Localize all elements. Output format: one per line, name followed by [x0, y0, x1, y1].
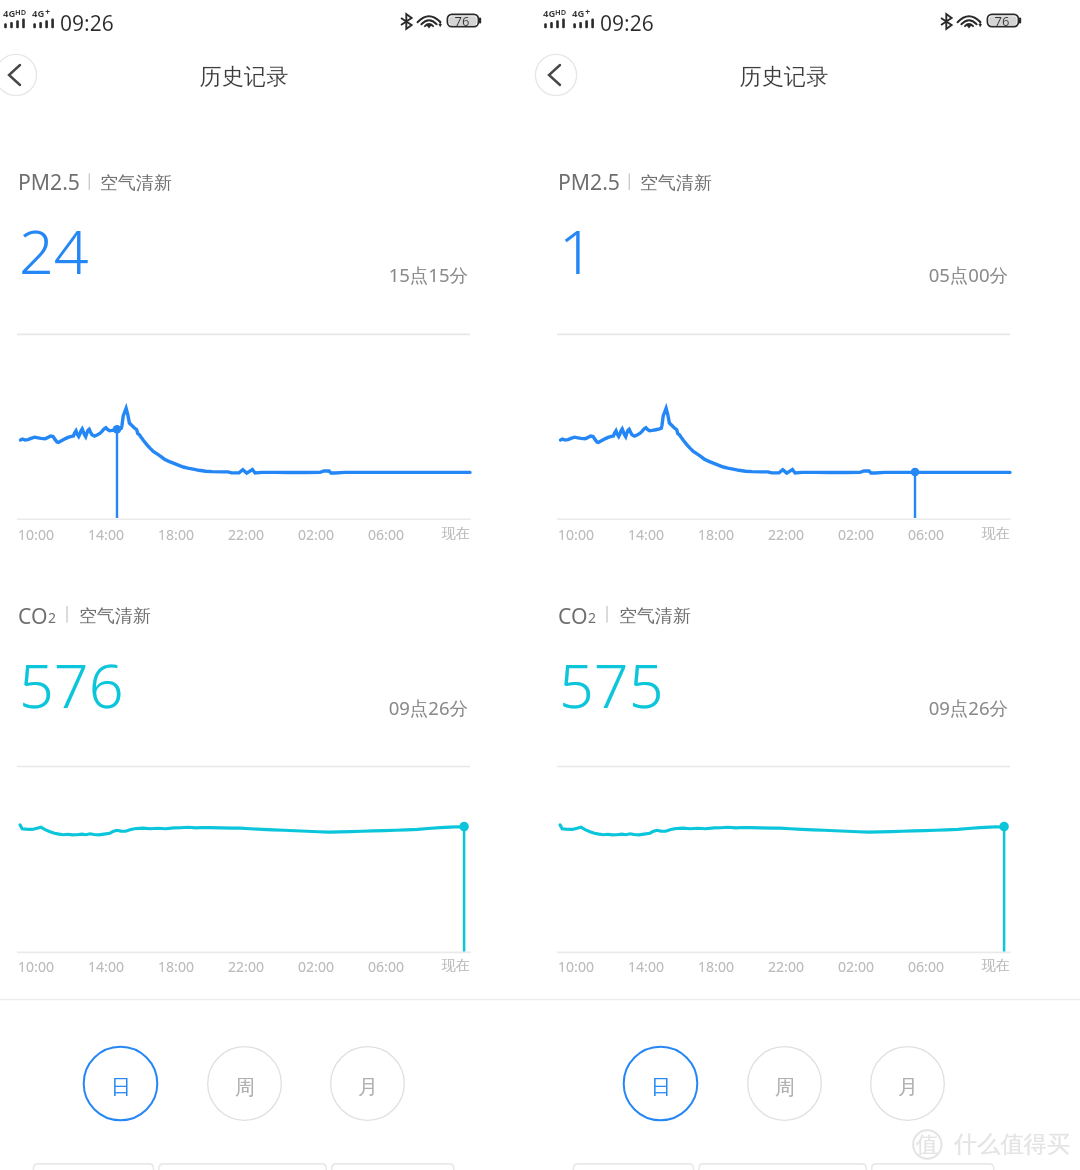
button[interactable]: 日 — [623, 1046, 698, 1121]
staticText: 22:00 — [746, 957, 826, 979]
staticText: 10:00 — [536, 957, 616, 979]
staticText: HD — [15, 7, 415, 19]
button[interactable]: CO2 history card — [0, 575, 540, 985]
staticText: 4G — [543, 7, 943, 22]
button[interactable]: Back — [0, 54, 37, 96]
staticText: 22:00 — [206, 525, 286, 547]
staticText: 历史记录 — [684, 63, 884, 99]
staticText: 09:26 — [600, 9, 1000, 43]
staticText: 现在 — [416, 525, 496, 547]
staticText: 空气清新 — [640, 172, 1040, 201]
staticText: 22:00 — [746, 525, 826, 547]
staticText: + — [585, 5, 985, 20]
staticText: 76 — [987, 12, 1017, 33]
staticText: 4G — [3, 7, 403, 22]
staticText: PM2.5 — [18, 167, 418, 201]
staticText: 10:00 — [0, 957, 76, 979]
button[interactable]: 月 — [870, 1046, 945, 1121]
staticText: 空气清新 — [79, 605, 479, 634]
button[interactable]: 月 — [330, 1046, 405, 1121]
staticText: 09:26 — [60, 9, 460, 43]
staticText: 14:00 — [66, 957, 146, 979]
staticText: 什么值得买 — [954, 1130, 1080, 1167]
staticText: 06:00 — [346, 525, 426, 547]
staticText: 日 — [111, 1075, 131, 1100]
staticText: 09点26分 — [608, 695, 1008, 725]
staticText: 月 — [358, 1075, 378, 1100]
staticText: 14:00 — [606, 525, 686, 547]
staticText: 现在 — [416, 957, 496, 979]
staticText: 4G — [32, 7, 432, 22]
button[interactable]: CO2 history card — [540, 575, 1080, 985]
staticText: 日 — [651, 1075, 671, 1100]
staticText: 14:00 — [606, 957, 686, 979]
staticText: 02:00 — [816, 525, 896, 547]
staticText: 周 — [775, 1075, 795, 1100]
staticText: 02:00 — [816, 957, 896, 979]
staticText: 06:00 — [346, 957, 426, 979]
staticText: 02:00 — [276, 525, 356, 547]
staticText: 18:00 — [136, 957, 216, 979]
staticText: HD — [555, 7, 955, 19]
button[interactable]: PM2.5 history card — [0, 140, 540, 555]
staticText: 576 — [19, 643, 419, 741]
staticText: 09点26分 — [68, 695, 468, 725]
staticText: 空气清新 — [100, 172, 500, 201]
staticText: 05点00分 — [608, 262, 1008, 292]
staticText: 2 — [588, 608, 988, 630]
staticText: 1 — [559, 209, 959, 307]
button[interactable]: PM2.5 history card — [540, 140, 1080, 555]
staticText: 现在 — [956, 957, 1036, 979]
staticText: 76 — [447, 12, 477, 33]
staticText: 24 — [19, 209, 419, 307]
staticText: CO — [18, 601, 418, 635]
staticText: 06:00 — [886, 525, 966, 547]
staticText: + — [45, 5, 445, 20]
staticText: 18:00 — [136, 525, 216, 547]
staticText: 2 — [48, 608, 448, 630]
staticText: 06:00 — [886, 957, 966, 979]
staticText: 周 — [235, 1075, 255, 1100]
staticText: 月 — [898, 1075, 918, 1100]
staticText: 10:00 — [536, 525, 616, 547]
staticText: 历史记录 — [144, 63, 344, 99]
staticText: PM2.5 — [558, 167, 958, 201]
button[interactable]: Back — [535, 54, 577, 96]
staticText: 10:00 — [0, 525, 76, 547]
staticText: 14:00 — [66, 525, 146, 547]
staticText: 现在 — [956, 525, 1036, 547]
staticText: 空气清新 — [619, 605, 1019, 634]
staticText: 值 — [916, 1131, 1080, 1166]
staticText: 18:00 — [676, 957, 756, 979]
staticText: 18:00 — [676, 525, 756, 547]
staticText: 4G — [572, 7, 972, 22]
staticText: 02:00 — [276, 957, 356, 979]
button[interactable]: 周 — [747, 1046, 822, 1121]
staticText: 575 — [559, 643, 959, 741]
button[interactable]: 周 — [207, 1046, 282, 1121]
staticText: CO — [558, 601, 958, 635]
staticText: 22:00 — [206, 957, 286, 979]
staticText: 15点15分 — [68, 262, 468, 292]
button[interactable]: 日 — [83, 1046, 158, 1121]
